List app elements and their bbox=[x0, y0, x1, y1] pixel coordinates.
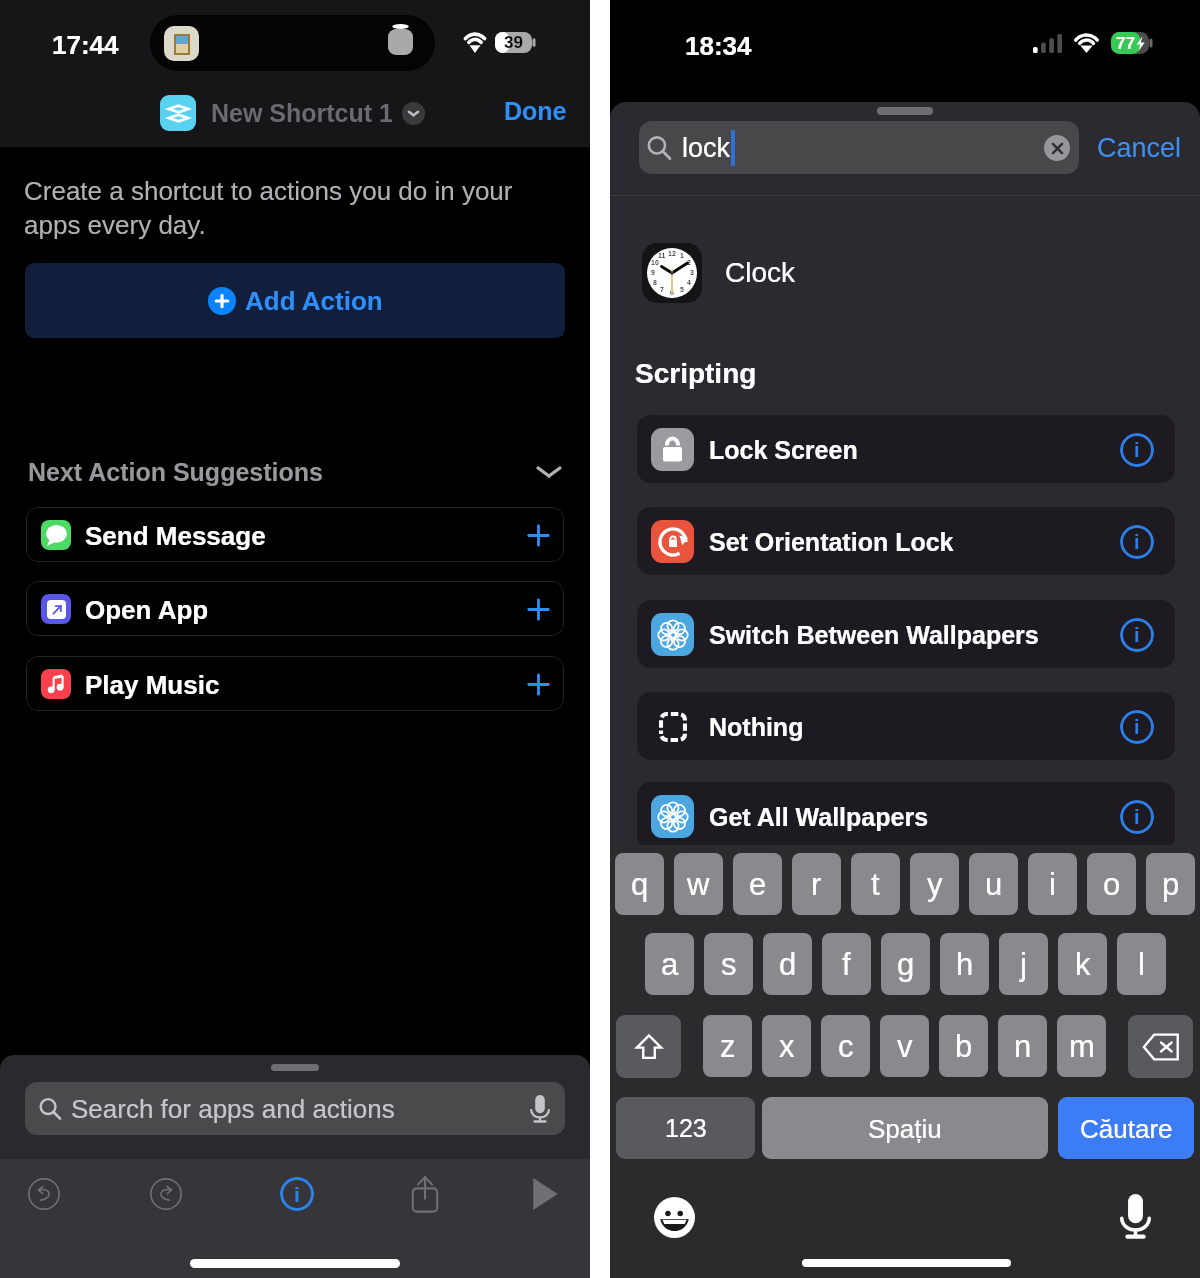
button[interactable]: d bbox=[763, 933, 812, 995]
button[interactable]: c bbox=[821, 1015, 870, 1077]
button[interactable]: Play Music bbox=[26, 656, 564, 711]
button[interactable]: i bbox=[1028, 853, 1077, 915]
staticText: i bbox=[1134, 716, 1140, 738]
staticText: s bbox=[721, 947, 737, 982]
staticText: Switch Between Wallpapers bbox=[709, 621, 1039, 649]
staticText: i bbox=[1049, 867, 1056, 902]
staticText: w bbox=[687, 867, 710, 902]
button[interactable]: Search for apps and actions bbox=[25, 1082, 565, 1135]
staticText: Clock bbox=[725, 257, 796, 288]
staticText: i bbox=[1134, 624, 1140, 646]
staticText: New Shortcut 1 bbox=[211, 99, 393, 127]
staticText: Create a shortcut to actions you do in y… bbox=[24, 176, 513, 240]
button[interactable]: j bbox=[999, 933, 1048, 995]
staticText: 11 bbox=[658, 252, 666, 260]
staticText: 39 bbox=[495, 33, 532, 52]
staticText: p bbox=[1162, 867, 1180, 902]
button[interactable]: u bbox=[969, 853, 1018, 915]
button[interactable]: Done bbox=[504, 97, 567, 125]
staticText: 17:44 bbox=[52, 30, 119, 59]
staticText: Spațiu bbox=[868, 1114, 942, 1143]
staticText: n bbox=[1014, 1029, 1032, 1064]
staticText: i bbox=[1134, 806, 1140, 828]
button[interactable]: Details bbox=[269, 1166, 325, 1222]
button[interactable]: b bbox=[939, 1015, 988, 1077]
staticText: Send Message bbox=[85, 521, 266, 550]
staticText: t bbox=[871, 867, 880, 902]
button[interactable]: Add Action bbox=[25, 263, 565, 338]
staticText: z bbox=[720, 1029, 736, 1064]
button[interactable]: w bbox=[674, 853, 723, 915]
button[interactable]: Clear text bbox=[1044, 135, 1070, 161]
button[interactable]: a bbox=[645, 933, 694, 995]
button[interactable]: Undo bbox=[16, 1166, 72, 1222]
button[interactable]: lock bbox=[639, 121, 1079, 174]
button[interactable]: r bbox=[792, 853, 841, 915]
button[interactable]: Nothing bbox=[637, 692, 1175, 760]
staticText: g bbox=[897, 947, 915, 982]
staticText: 12 bbox=[668, 250, 676, 258]
button[interactable]: Cancel bbox=[1097, 133, 1182, 163]
button[interactable]: 123 bbox=[616, 1097, 755, 1159]
button[interactable]: m bbox=[1057, 1015, 1106, 1077]
button[interactable]: More options bbox=[402, 102, 425, 125]
button[interactable]: t bbox=[851, 853, 900, 915]
staticText: Lock Screen bbox=[709, 436, 858, 464]
button[interactable]: z bbox=[703, 1015, 752, 1077]
button[interactable]: Get All Wallpapers bbox=[637, 782, 1175, 850]
button[interactable]: Send Message bbox=[26, 507, 564, 562]
staticText: 5 bbox=[680, 286, 684, 294]
button[interactable]: y bbox=[910, 853, 959, 915]
staticText: 77 bbox=[1116, 34, 1135, 53]
staticText: k bbox=[1075, 947, 1091, 982]
staticText: Done bbox=[504, 97, 567, 125]
staticText: lock bbox=[682, 133, 731, 163]
button[interactable]: Spațiu bbox=[762, 1097, 1048, 1159]
button[interactable]: Info bbox=[1120, 618, 1154, 652]
button[interactable]: Set Orientation Lock bbox=[637, 507, 1175, 575]
button[interactable]: Căutare bbox=[1058, 1097, 1194, 1159]
button[interactable]: Run bbox=[517, 1166, 573, 1222]
staticText: 6 bbox=[670, 289, 674, 297]
button[interactable]: Switch Between Wallpapers bbox=[637, 600, 1175, 668]
button[interactable]: Info bbox=[1120, 525, 1154, 559]
staticText: Search for apps and actions bbox=[71, 1094, 395, 1123]
button[interactable]: e bbox=[733, 853, 782, 915]
button[interactable]: Backspace bbox=[1128, 1015, 1193, 1078]
button[interactable]: Collapse bbox=[532, 455, 566, 489]
button[interactable]: x bbox=[762, 1015, 811, 1077]
staticText: 2 bbox=[687, 259, 691, 267]
button[interactable]: k bbox=[1058, 933, 1107, 995]
staticText: Căutare bbox=[1080, 1114, 1173, 1143]
button[interactable]: l bbox=[1117, 933, 1166, 995]
button[interactable]: o bbox=[1087, 853, 1136, 915]
button[interactable]: g bbox=[881, 933, 930, 995]
staticText: 9 bbox=[651, 269, 655, 277]
button[interactable]: v bbox=[880, 1015, 929, 1077]
staticText: Cancel bbox=[1097, 133, 1182, 163]
staticText: d bbox=[779, 947, 797, 982]
button[interactable]: Info bbox=[1120, 433, 1154, 467]
button[interactable]: Info bbox=[1120, 800, 1154, 834]
button[interactable]: f bbox=[822, 933, 871, 995]
button[interactable]: p bbox=[1146, 853, 1195, 915]
button[interactable]: Share bbox=[397, 1166, 453, 1222]
staticText: Nothing bbox=[709, 713, 804, 741]
button[interactable]: h bbox=[940, 933, 989, 995]
button[interactable]: n bbox=[998, 1015, 1047, 1077]
staticText: c bbox=[838, 1029, 854, 1064]
button[interactable]: Open App bbox=[26, 581, 564, 636]
button[interactable]: Shift bbox=[616, 1015, 681, 1078]
staticText: 4 bbox=[687, 279, 691, 287]
button[interactable]: Redo bbox=[138, 1166, 194, 1222]
staticText: 10 bbox=[651, 259, 659, 267]
button[interactable]: Lock Screen bbox=[637, 415, 1175, 483]
staticText: i bbox=[294, 1183, 300, 1206]
button[interactable]: q bbox=[615, 853, 664, 915]
button[interactable]: Emoji bbox=[654, 1197, 695, 1238]
button[interactable]: Dictation bbox=[1113, 1194, 1158, 1239]
button[interactable]: s bbox=[704, 933, 753, 995]
staticText: x bbox=[779, 1029, 795, 1064]
button[interactable]: Info bbox=[1120, 710, 1154, 744]
button[interactable]: 12 bbox=[610, 230, 1200, 315]
